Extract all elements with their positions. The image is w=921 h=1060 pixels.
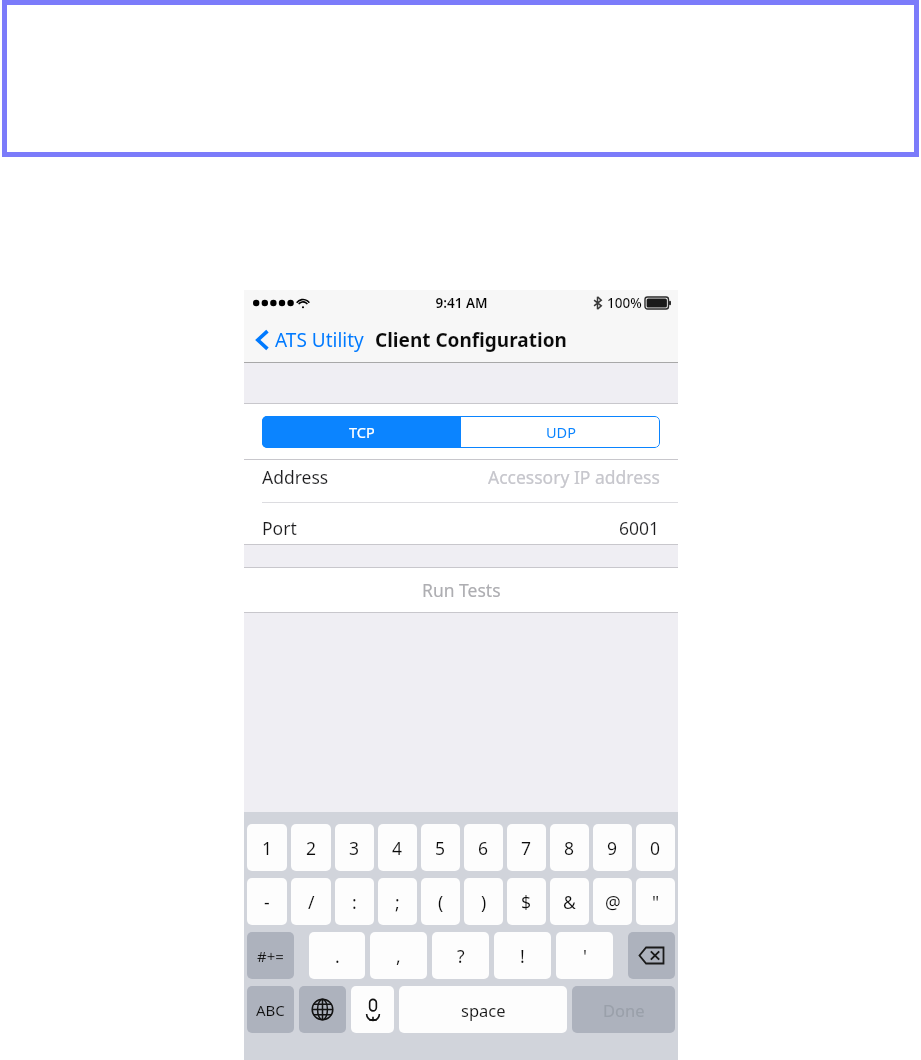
button[interactable]: ? — [432, 932, 489, 979]
staticText: - — [264, 890, 270, 914]
staticText: ; — [395, 890, 400, 914]
button[interactable]: $ — [507, 878, 546, 925]
staticText: ! — [520, 944, 525, 968]
button[interactable]: space — [399, 986, 567, 1033]
staticText: ) — [481, 890, 487, 914]
button[interactable]: Port — [244, 511, 678, 544]
staticText: 9:41 AM — [435, 294, 488, 312]
button[interactable]: @ — [593, 878, 632, 925]
button[interactable]: ; — [378, 878, 417, 925]
staticText: Address — [262, 465, 329, 489]
button[interactable]: Dictation — [351, 986, 394, 1033]
staticText: Accessory IP address — [488, 465, 660, 489]
staticText: & — [563, 890, 576, 914]
button[interactable]: 6 — [464, 824, 503, 871]
staticText: ' — [583, 944, 587, 968]
staticText: Done — [603, 999, 645, 1021]
button[interactable]: UDP — [461, 416, 660, 448]
staticText: 6 — [478, 836, 489, 860]
staticText: , — [396, 944, 401, 968]
button[interactable]: " — [636, 878, 675, 925]
staticText: @ — [605, 890, 621, 914]
button[interactable]: 1 — [247, 824, 287, 871]
button[interactable]: 9 — [593, 824, 632, 871]
staticText: $ — [521, 890, 532, 914]
staticText: 6001 — [619, 516, 660, 540]
staticText: ATS Utility — [275, 327, 364, 353]
button[interactable]: Address — [244, 460, 678, 493]
button[interactable]: ATS Utility — [254, 321, 366, 359]
button[interactable]: : — [335, 878, 374, 925]
button[interactable]: ABC — [247, 986, 294, 1033]
button[interactable]: 8 — [550, 824, 589, 871]
staticText: Port — [262, 516, 297, 540]
button[interactable]: ) — [464, 878, 503, 925]
button[interactable]: / — [291, 878, 331, 925]
staticText: " — [652, 890, 660, 914]
button[interactable]: . — [309, 932, 365, 979]
staticText: TCP — [349, 422, 375, 442]
button[interactable]: Done — [572, 986, 675, 1033]
staticText: / — [308, 890, 315, 914]
staticText: 100% — [607, 294, 642, 312]
staticText: 3 — [349, 836, 360, 860]
staticText: 5 — [435, 836, 446, 860]
button[interactable]: 0 — [636, 824, 675, 871]
button[interactable]: 7 — [507, 824, 546, 871]
staticText: 2 — [306, 836, 317, 860]
button[interactable]: 5 — [421, 824, 460, 871]
staticText: 1 — [262, 836, 273, 860]
button[interactable]: 3 — [335, 824, 374, 871]
button[interactable]: 2 — [291, 824, 331, 871]
staticText: #+= — [257, 946, 284, 966]
staticText: 9 — [607, 836, 618, 860]
button[interactable]: 4 — [378, 824, 417, 871]
button[interactable]: & — [550, 878, 589, 925]
button[interactable]: - — [247, 878, 287, 925]
staticText: space — [461, 999, 506, 1021]
button[interactable]: Next keyboard — [299, 986, 346, 1033]
button[interactable]: ' — [556, 932, 613, 979]
staticText: Client Configuration — [375, 327, 567, 353]
staticText: 0 — [650, 836, 661, 860]
staticText: ABC — [256, 1000, 285, 1020]
button[interactable]: ! — [494, 932, 551, 979]
button[interactable]: #+= — [247, 932, 294, 979]
button[interactable]: , — [370, 932, 427, 979]
staticText: UDP — [546, 422, 576, 442]
staticText: Run Tests — [422, 578, 501, 602]
button[interactable]: Run Tests — [244, 568, 678, 612]
staticText: 7 — [521, 836, 532, 860]
staticText: ( — [438, 890, 444, 914]
button[interactable]: Delete — [628, 932, 675, 979]
staticText: 4 — [392, 836, 403, 860]
staticText: ? — [457, 944, 465, 968]
button[interactable]: ( — [421, 878, 460, 925]
staticText: : — [352, 890, 357, 914]
button[interactable]: TCP — [262, 416, 461, 448]
staticText: 8 — [564, 836, 575, 860]
staticText: . — [335, 944, 340, 968]
